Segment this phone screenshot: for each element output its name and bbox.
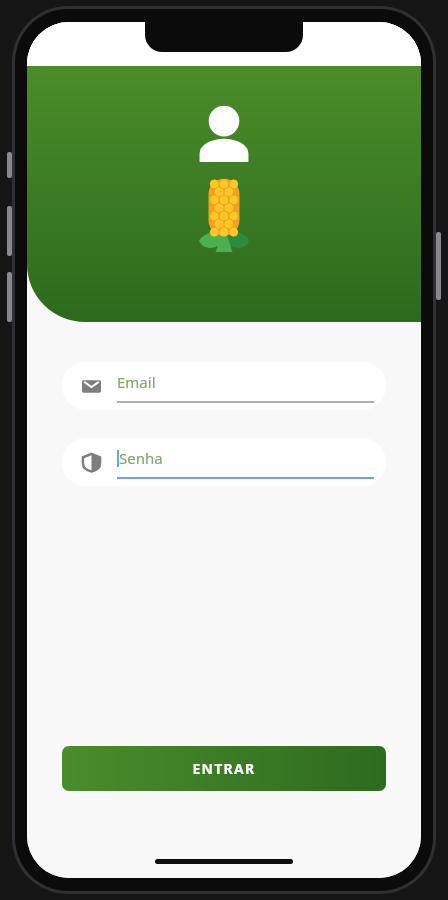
staticText: Email	[117, 372, 156, 392]
other: Password	[82, 453, 101, 472]
other: Corn	[199, 178, 249, 252]
other: Email	[82, 377, 101, 396]
staticText: ENTRAR	[192, 759, 256, 778]
button[interactable]: ENTRAR	[62, 746, 386, 791]
button[interactable]: Password	[62, 438, 386, 486]
button[interactable]: Email	[62, 362, 386, 410]
staticText: Senha	[119, 448, 163, 468]
other: User	[198, 104, 250, 162]
